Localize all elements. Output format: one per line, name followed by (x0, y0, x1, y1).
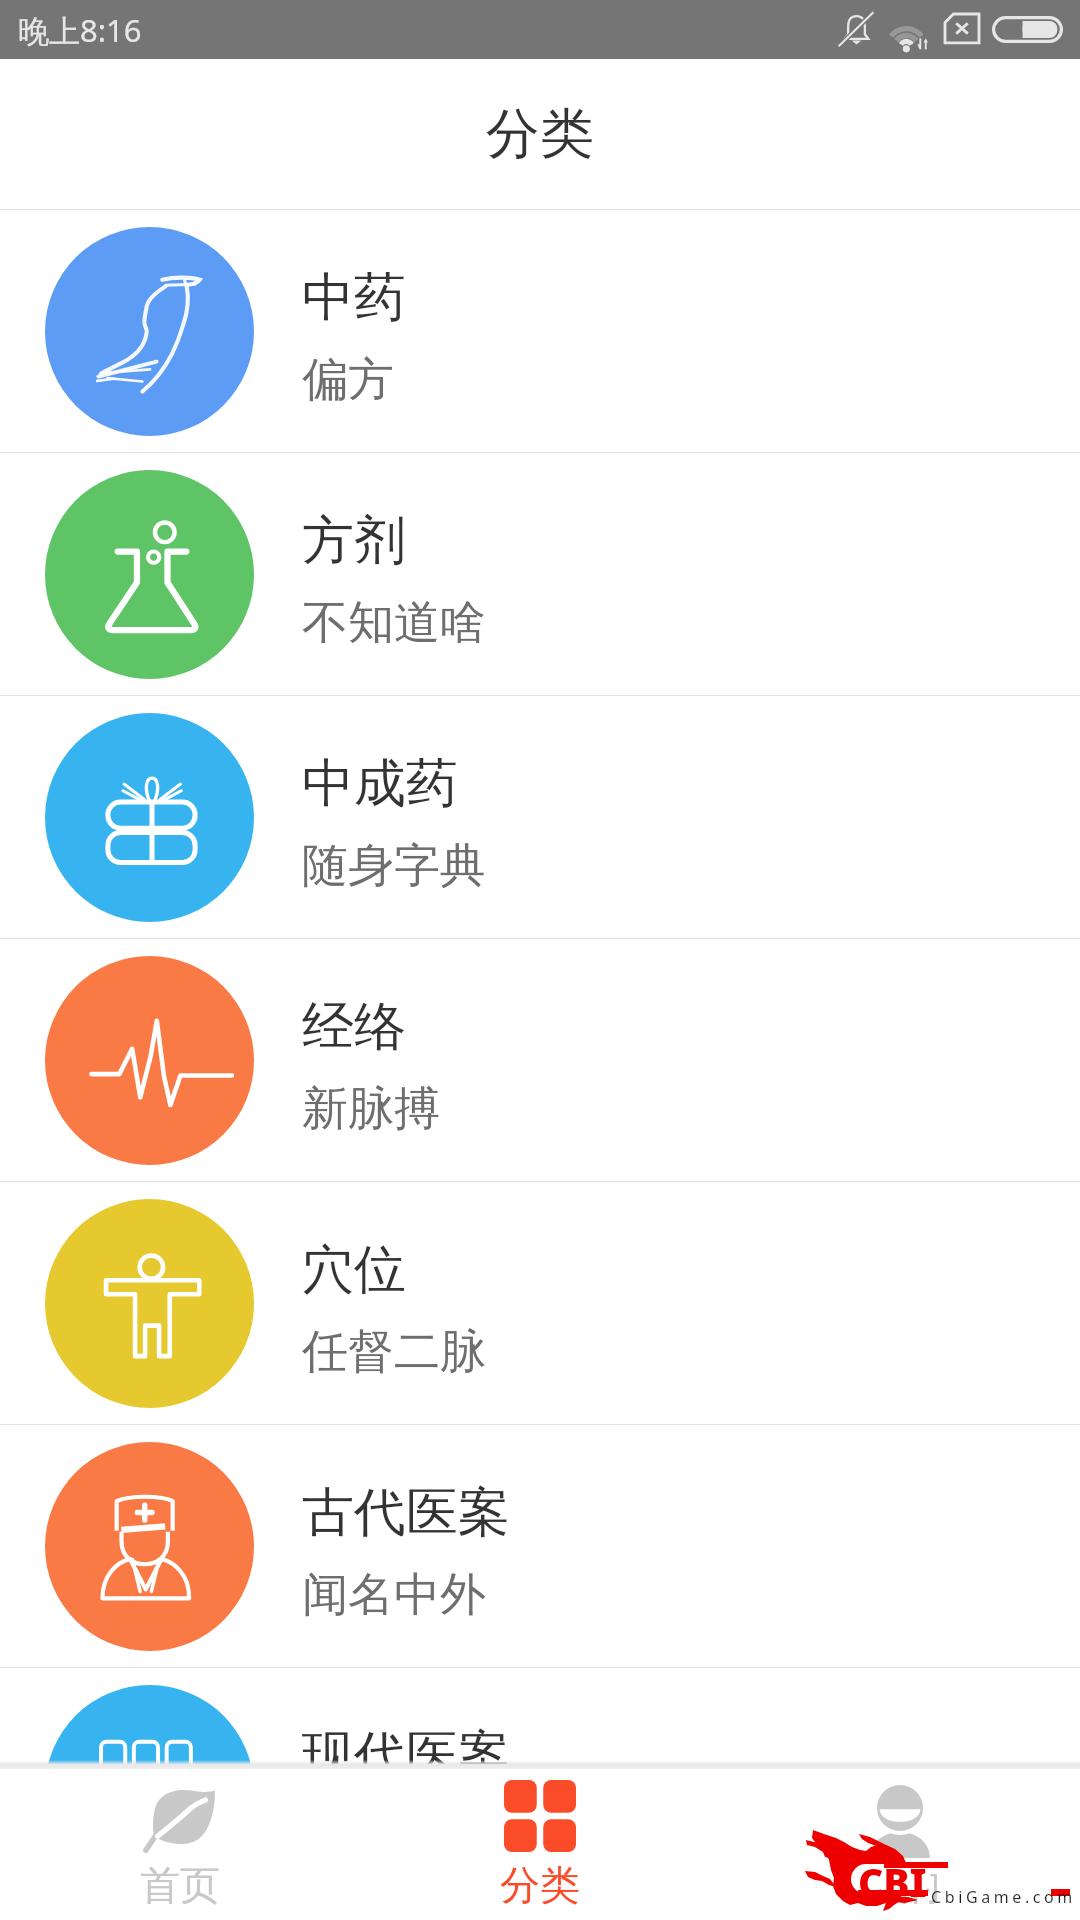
staticText: 我的 (860, 1860, 940, 1910)
staticText: 中药 (302, 265, 406, 331)
button[interactable]: 方剂 (0, 453, 1080, 695)
staticText: 闻名中外 (302, 1566, 486, 1624)
button[interactable]: 分类 (360, 1769, 720, 1920)
staticText: 穴位 (302, 1237, 406, 1303)
button[interactable]: 首页 (0, 1769, 360, 1920)
button[interactable]: 古代医案 (0, 1425, 1080, 1667)
button[interactable]: 现代医案 (0, 1668, 1080, 1910)
staticText: 中成药 (302, 751, 458, 817)
staticText: 不知道啥 (302, 594, 486, 652)
staticText: 分类 (486, 100, 594, 168)
button[interactable]: 穴位 (0, 1182, 1080, 1424)
staticText: 现代医案 (302, 1723, 510, 1789)
staticText: 古代医案 (302, 1480, 510, 1546)
button[interactable]: 经络 (0, 939, 1080, 1181)
staticText: CbiGame.com (931, 1886, 1076, 1908)
staticText: 晚上8:16 (18, 9, 142, 51)
staticText: CBI (858, 1855, 927, 1908)
staticText: 偏方 (302, 351, 394, 409)
staticText: 首页 (140, 1860, 220, 1910)
button[interactable]: 中成药 (0, 696, 1080, 938)
staticText: 方剂 (302, 508, 406, 574)
button[interactable]: 中药 (0, 210, 1080, 452)
button[interactable]: 我的 (720, 1769, 1080, 1920)
staticText: 任督二脉 (302, 1323, 486, 1381)
staticText: 经络 (302, 994, 406, 1060)
staticText: 新脉搏 (302, 1080, 440, 1138)
staticText: 随身字典 (302, 837, 486, 895)
staticText: 分类 (500, 1860, 580, 1910)
